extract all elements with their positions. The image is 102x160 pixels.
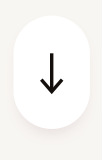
button[interactable]: Download: [13, 16, 90, 129]
